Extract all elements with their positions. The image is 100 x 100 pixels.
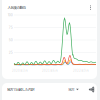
staticText: 75 (9, 26, 13, 29)
button[interactable]: 地方で比較した内訳 (7, 87, 34, 92)
staticText: 2020年3月 (12, 68, 28, 73)
staticText: 100 (8, 13, 13, 17)
staticText: 人気度の動向 (7, 5, 25, 10)
staticText: 25 (9, 51, 13, 54)
staticText: 地方で比較した内訳 (7, 87, 34, 92)
staticText: 地方 (68, 87, 74, 92)
staticText: 2022年9月 (73, 68, 89, 73)
staticText: 50 (9, 38, 13, 42)
button[interactable]: Share (88, 86, 94, 92)
staticText: 2021年6月 (42, 68, 58, 73)
button[interactable]: 地方 (68, 87, 79, 92)
button[interactable]: More options (87, 4, 94, 12)
